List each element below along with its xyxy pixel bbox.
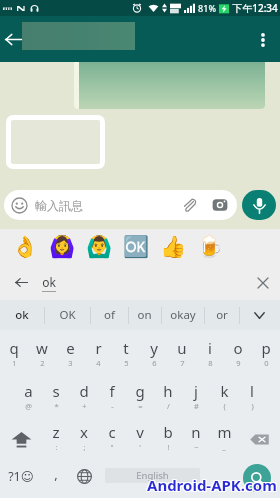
staticText: c <box>108 422 116 442</box>
staticText: Android-APK.com <box>148 474 278 494</box>
staticText: Android-APK.com <box>146 475 276 495</box>
button[interactable]: c <box>98 417 126 461</box>
staticText: r <box>95 338 102 358</box>
staticText: p <box>261 338 271 358</box>
staticText: ; <box>83 442 86 452</box>
staticText: ?1☺ <box>8 468 34 485</box>
staticText: 81% <box>198 2 216 14</box>
button[interactable]: OK <box>44 300 90 330</box>
button[interactable]: s <box>42 376 70 420</box>
button[interactable]: 🍺 <box>192 229 229 265</box>
staticText: + <box>82 401 87 411</box>
button[interactable]: 🆗 <box>118 229 155 265</box>
staticText: ' <box>139 442 141 452</box>
staticText: 0 <box>264 358 269 368</box>
staticText: y <box>150 338 158 358</box>
staticText: o <box>233 338 243 358</box>
staticText: 2 <box>40 358 45 368</box>
staticText: 9 <box>236 358 241 368</box>
staticText: a <box>24 381 33 401</box>
button[interactable]: 👍 <box>155 229 192 265</box>
button[interactable]: l <box>238 376 266 420</box>
button[interactable]: f <box>98 376 126 420</box>
button[interactable]: d <box>70 376 98 420</box>
button[interactable]: Back <box>0 265 42 300</box>
staticText: k <box>220 381 229 401</box>
button[interactable]: a <box>14 376 42 420</box>
staticText: Android-APK.com <box>146 476 276 496</box>
button[interactable]: ok <box>0 300 44 330</box>
button[interactable]: Search <box>243 464 271 492</box>
staticText: 👍 <box>160 235 187 260</box>
button[interactable]: on <box>128 300 161 330</box>
button[interactable]: h <box>154 376 182 420</box>
staticText: s <box>52 381 60 401</box>
button[interactable]: j <box>182 376 210 420</box>
button[interactable]: Back <box>0 25 27 53</box>
button[interactable]: t <box>112 333 140 377</box>
button[interactable]: u <box>168 333 196 377</box>
button[interactable]: x <box>70 417 98 461</box>
button[interactable]: , <box>42 454 70 498</box>
staticText: w <box>36 338 48 358</box>
button[interactable]: of <box>90 300 128 330</box>
staticText: g <box>135 381 145 401</box>
staticText: OK <box>59 307 76 323</box>
staticText: Android-APK.com <box>147 476 277 496</box>
button[interactable]: okay <box>161 300 204 330</box>
staticText: ~ <box>194 442 199 452</box>
button[interactable]: Backspace <box>238 417 280 461</box>
button[interactable]: g <box>126 376 154 420</box>
button[interactable]: 🙆‍♂️ <box>81 229 118 265</box>
button[interactable]: English <box>105 468 200 483</box>
button[interactable]: Change language <box>70 454 98 498</box>
button[interactable]: b <box>154 417 182 461</box>
button[interactable]: e <box>56 333 84 377</box>
button[interactable]: or <box>204 300 239 330</box>
button[interactable]: o <box>224 333 252 377</box>
button[interactable]: w <box>28 333 56 377</box>
button[interactable]: 輸入訊息 <box>4 190 237 220</box>
staticText: @ <box>25 401 32 411</box>
button[interactable]: More options <box>249 26 277 54</box>
staticText: Android-APK.com <box>147 475 277 495</box>
staticText: 🆗 <box>123 235 150 260</box>
staticText: l <box>250 381 254 401</box>
button[interactable]: ?1☺ <box>4 454 38 498</box>
button[interactable]: y <box>140 333 168 377</box>
staticText: ok <box>42 274 56 290</box>
staticText: 1 <box>12 358 17 368</box>
button[interactable]: z <box>42 417 70 461</box>
staticText: English <box>136 469 169 482</box>
staticText: or <box>216 307 228 323</box>
button[interactable]: 🙆‍♀️ <box>44 229 81 265</box>
button[interactable]: i <box>196 333 224 377</box>
staticText: - <box>111 401 114 411</box>
staticText: 🙆‍♂️ <box>86 235 113 260</box>
button[interactable]: r <box>84 333 112 377</box>
staticText: Android-APK.com <box>147 474 277 494</box>
staticText: 👌 <box>12 235 39 260</box>
staticText: 🍺 <box>197 235 224 260</box>
button[interactable]: Clear <box>246 265 280 300</box>
staticText: j <box>194 381 198 401</box>
staticText: , <box>54 465 58 483</box>
staticText: b <box>163 422 173 442</box>
staticText: ! <box>167 442 170 452</box>
staticText: 4 <box>96 358 101 368</box>
button[interactable]: p <box>252 333 280 377</box>
button[interactable]: q <box>0 333 28 377</box>
button[interactable]: Voice message <box>242 190 276 220</box>
button[interactable]: m <box>210 417 238 461</box>
button[interactable]: 👌 <box>7 229 44 265</box>
staticText: Android-APK.com <box>148 475 278 495</box>
staticText: 6 <box>152 358 157 368</box>
staticText: 7 <box>180 358 185 368</box>
button[interactable]: k <box>210 376 238 420</box>
button[interactable]: Expand suggestions <box>239 300 280 330</box>
staticText: Android-APK.com <box>148 476 278 496</box>
staticText: on <box>137 307 152 323</box>
button[interactable]: Shift <box>0 417 42 461</box>
button[interactable]: v <box>126 417 154 461</box>
button[interactable]: n <box>182 417 210 461</box>
